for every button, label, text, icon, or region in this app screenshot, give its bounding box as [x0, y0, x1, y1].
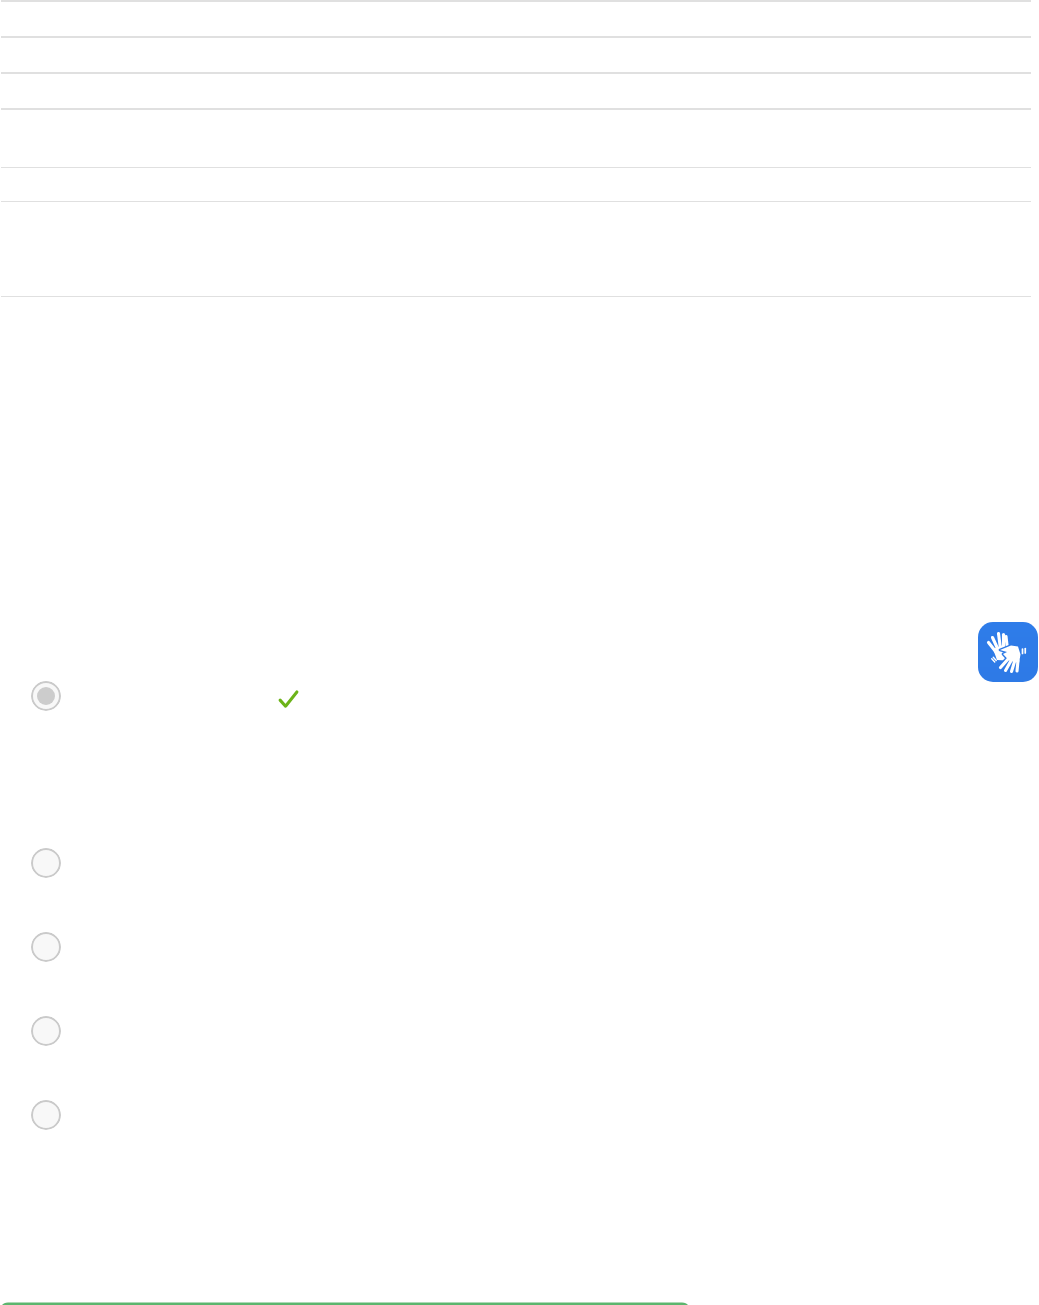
button[interactable]: Continue	[0, 1296, 690, 1305]
button[interactable]: Sign language interpretation	[978, 622, 1038, 682]
button[interactable]: Answer option 1, selected	[0, 654, 1039, 738]
